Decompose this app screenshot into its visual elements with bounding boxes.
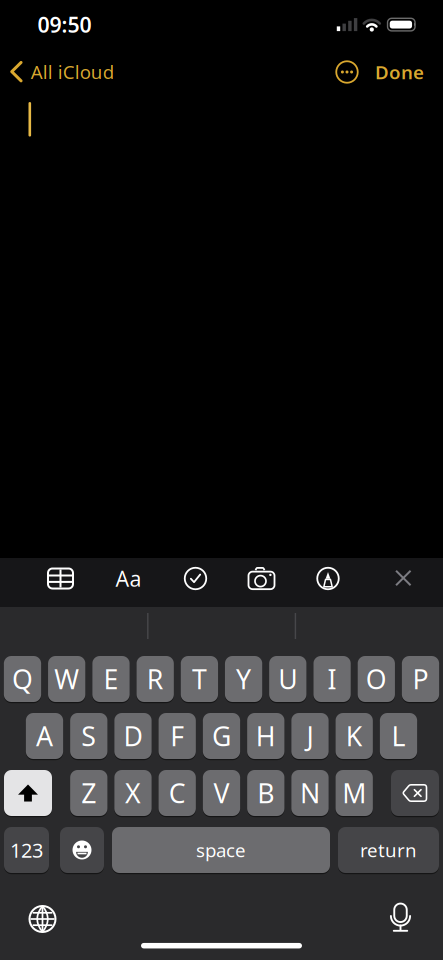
button[interactable]: Next keyboard <box>25 902 59 936</box>
staticText: T <box>192 661 207 697</box>
button[interactable]: C <box>158 769 196 817</box>
button[interactable]: Back, All iCloud <box>10 56 114 88</box>
staticText: Z <box>81 775 96 811</box>
button[interactable]: Done <box>375 57 424 87</box>
button[interactable]: T <box>181 655 218 703</box>
staticText: C <box>169 775 186 811</box>
button[interactable]: Delete <box>391 769 439 817</box>
staticText: R <box>147 661 164 697</box>
staticText: A <box>36 718 53 754</box>
button[interactable]: H <box>247 712 284 760</box>
button[interactable]: F <box>158 712 196 760</box>
staticText: G <box>212 718 231 754</box>
button[interactable]: K <box>336 712 373 760</box>
button[interactable]: X <box>114 769 152 817</box>
staticText: All iCloud <box>31 59 114 84</box>
staticText: Q <box>12 661 33 697</box>
staticText: Done <box>375 60 424 84</box>
staticText: I <box>328 661 337 697</box>
button[interactable]: E <box>92 655 130 703</box>
staticText: V <box>213 775 229 811</box>
button[interactable]: Q <box>4 655 41 703</box>
button[interactable]: O <box>358 655 395 703</box>
button[interactable]: D <box>114 712 152 760</box>
button[interactable]: Shift <box>4 769 52 817</box>
button[interactable]: G <box>203 712 240 760</box>
button[interactable]: space <box>112 826 330 874</box>
button[interactable]: P <box>402 655 439 703</box>
button[interactable]: U <box>269 655 306 703</box>
button[interactable]: Y <box>225 655 262 703</box>
button[interactable]: R <box>136 655 174 703</box>
staticText: H <box>256 718 276 754</box>
staticText: U <box>278 661 297 697</box>
staticText: J <box>306 718 313 754</box>
staticText: D <box>123 718 142 754</box>
staticText: F <box>170 718 184 754</box>
button[interactable]: W <box>48 655 85 703</box>
button[interactable]: L <box>380 712 417 760</box>
button[interactable]: Insert table <box>40 558 80 598</box>
button[interactable]: M <box>336 769 373 817</box>
button[interactable]: Markup <box>308 558 348 598</box>
button[interactable]: I <box>313 655 351 703</box>
button[interactable]: Insert photo <box>241 558 281 598</box>
button[interactable]: A <box>26 712 63 760</box>
staticText: S <box>81 718 96 754</box>
button[interactable]: V <box>203 769 240 817</box>
staticText: O <box>366 661 387 697</box>
button[interactable]: Formatting <box>108 558 148 598</box>
button[interactable]: 123 <box>4 826 49 874</box>
staticText: L <box>391 718 405 754</box>
staticText: space <box>196 838 246 862</box>
staticText: M <box>342 775 366 811</box>
button[interactable]: J <box>291 712 329 760</box>
button[interactable]: Dismiss toolbar <box>385 560 421 596</box>
button[interactable]: N <box>291 769 329 817</box>
button[interactable]: return <box>338 826 439 874</box>
button[interactable]: More <box>334 59 360 85</box>
staticText: W <box>54 661 79 697</box>
staticText: X <box>125 775 141 811</box>
button[interactable]: B <box>247 769 284 817</box>
staticText: Aa <box>115 564 141 593</box>
button[interactable]: Checklist <box>175 558 215 598</box>
staticText: return <box>360 838 417 862</box>
staticText: 09:50 <box>37 10 91 39</box>
button[interactable]: S <box>70 712 107 760</box>
staticText: B <box>257 775 274 811</box>
staticText: 123 <box>10 837 43 863</box>
staticText: N <box>300 775 320 811</box>
staticText: Y <box>236 661 251 697</box>
button[interactable]: Dictation <box>385 900 415 936</box>
button[interactable]: Emoji <box>60 826 104 874</box>
staticText: P <box>412 661 428 697</box>
button[interactable]: Z <box>70 769 107 817</box>
staticText: K <box>346 718 363 754</box>
staticText: E <box>103 661 118 697</box>
